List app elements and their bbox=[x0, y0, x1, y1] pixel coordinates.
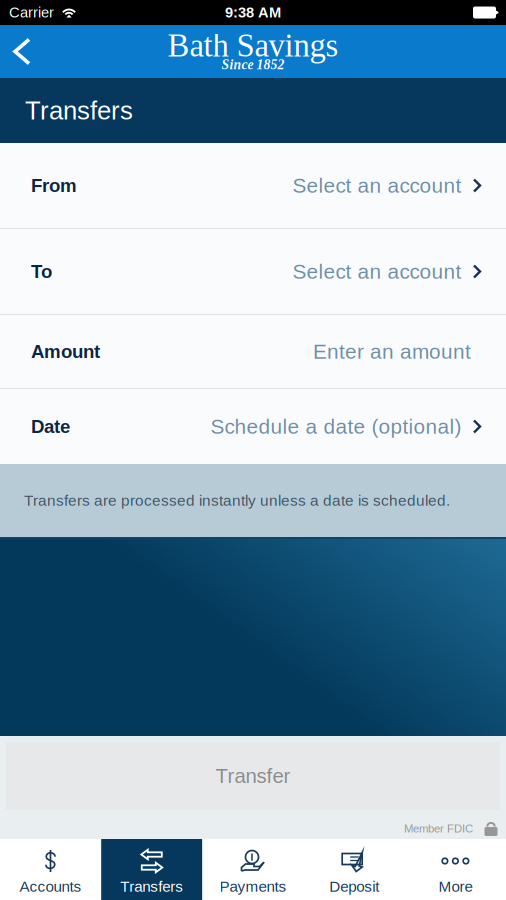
staticText: 9:38 AM bbox=[225, 4, 281, 21]
button[interactable]: From bbox=[0, 143, 506, 228]
staticText: Select an account bbox=[292, 260, 461, 283]
staticText: Accounts bbox=[20, 878, 82, 895]
staticText: Bath Savings bbox=[167, 27, 338, 64]
button[interactable]: Amount bbox=[0, 315, 506, 388]
staticText: To bbox=[31, 261, 52, 282]
staticText: Date bbox=[31, 416, 70, 437]
staticText: Amount bbox=[31, 341, 100, 362]
staticText: Schedule a date (optional) bbox=[210, 415, 461, 438]
button[interactable]: Back bbox=[0, 25, 44, 77]
staticText: Transfer bbox=[215, 765, 290, 787]
button[interactable]: Transfer bbox=[6, 742, 500, 810]
button[interactable]: Accounts bbox=[0, 839, 101, 900]
button[interactable]: Payments bbox=[202, 839, 304, 900]
button[interactable]: Deposit bbox=[304, 839, 405, 900]
staticText: Deposit bbox=[329, 878, 379, 895]
staticText: Payments bbox=[219, 878, 286, 895]
button[interactable]: More bbox=[405, 839, 506, 900]
staticText: From bbox=[31, 175, 77, 196]
button[interactable]: Transfers bbox=[101, 839, 202, 900]
staticText: Transfers bbox=[25, 96, 133, 125]
staticText: Select an account bbox=[292, 174, 461, 197]
staticText: Transfers bbox=[120, 878, 183, 895]
staticText: Transfers are processed instantly unless… bbox=[24, 492, 450, 509]
staticText: Carrier bbox=[9, 4, 54, 21]
staticText: More bbox=[438, 878, 472, 895]
staticText: Member FDIC bbox=[404, 822, 473, 835]
staticText: Enter an amount bbox=[313, 340, 471, 363]
staticText: Since 1852 bbox=[221, 57, 284, 72]
button[interactable]: Date bbox=[0, 389, 506, 464]
button[interactable]: To bbox=[0, 229, 506, 314]
